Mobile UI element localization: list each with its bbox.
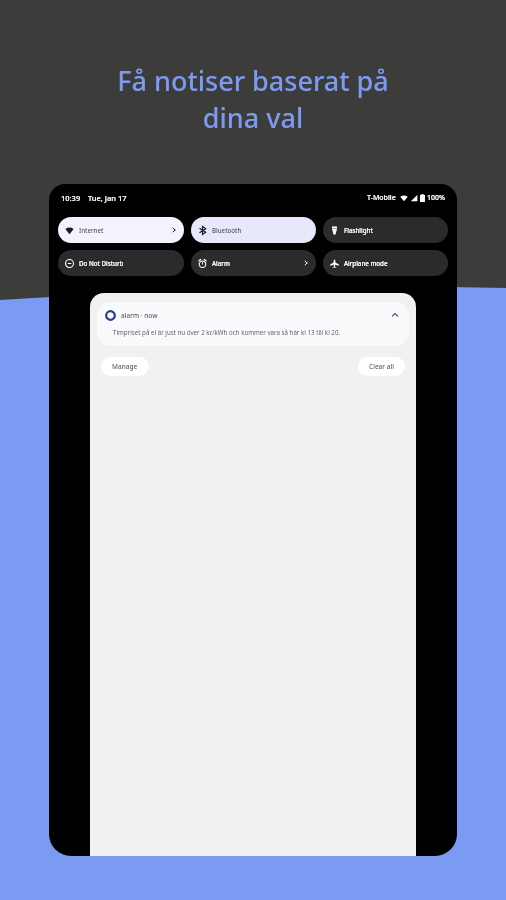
staticText: alarm · now [121,311,158,320]
button[interactable]: alarm · now [97,302,409,346]
button[interactable]: Flashlight [323,217,448,243]
button[interactable]: Clear all [358,357,405,376]
staticText: Clear all [369,362,394,371]
button[interactable]: Alarm [191,250,316,276]
staticText: Do Not Disturb [79,259,124,267]
button[interactable]: Collapse [389,309,401,321]
staticText: Tue, Jan 17 [88,193,127,203]
button[interactable]: Internet [58,217,184,243]
button[interactable]: Do Not Disturb [58,250,184,276]
staticText: Internet [79,226,104,234]
button[interactable]: Airplane mode [323,250,448,276]
staticText: Manage [112,362,138,371]
staticText: Timpriset på el är just nu över 2 kr/kWh… [113,328,341,336]
staticText: Airplane mode [344,259,388,267]
button[interactable]: Manage [101,357,149,376]
staticText: Få notiser baserat på dina val [20,62,486,136]
button[interactable]: Bluetooth [191,217,316,243]
staticText: 100% [427,193,445,203]
staticText: Alarm [212,259,230,267]
staticText: Bluetooth [212,226,242,234]
staticText: Flashlight [344,226,373,234]
staticText: 10:39 [61,193,81,203]
staticText: T-Mobile [367,193,396,203]
